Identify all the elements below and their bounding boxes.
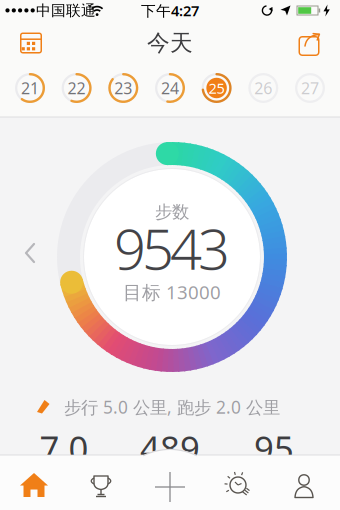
staticText: 步数	[155, 201, 189, 223]
button[interactable]: 23日	[106, 71, 140, 105]
button[interactable]: 分享	[296, 29, 326, 59]
staticText: 26	[254, 77, 272, 99]
staticText: 23	[114, 77, 132, 99]
staticText: 25	[209, 78, 225, 98]
button[interactable]: 27日	[293, 71, 327, 105]
button[interactable]: 排行榜	[85, 473, 117, 501]
staticText: 24	[161, 77, 179, 99]
button[interactable]: 22日	[60, 71, 94, 105]
button[interactable]: 26日	[246, 71, 280, 105]
button[interactable]: 24日	[153, 71, 187, 105]
button[interactable]: 发现	[222, 472, 254, 500]
button[interactable]: 21日	[13, 71, 47, 105]
button[interactable]: 首页	[17, 471, 51, 501]
button[interactable]: 我的	[288, 473, 320, 501]
staticText: 目标 13000	[123, 280, 221, 304]
staticText: 步行 5.0 公里, 跑步 2.0 公里	[64, 395, 280, 418]
staticText: 7.0	[39, 425, 88, 471]
staticText: 今天	[147, 29, 193, 57]
staticText: 489	[140, 425, 200, 471]
staticText: 9543	[114, 211, 230, 285]
staticText: 中国联通	[36, 1, 96, 19]
staticText: 27	[301, 77, 319, 99]
button[interactable]: 前一天	[0, 0, 340, 510]
button[interactable]: 添加	[155, 472, 185, 502]
staticText: 下午4:27	[141, 1, 199, 20]
button[interactable]: 25日	[200, 71, 234, 105]
staticText: 21	[21, 77, 39, 99]
staticText: 22	[68, 77, 86, 99]
button[interactable]: 日历	[15, 29, 47, 59]
staticText: 95	[254, 425, 294, 471]
